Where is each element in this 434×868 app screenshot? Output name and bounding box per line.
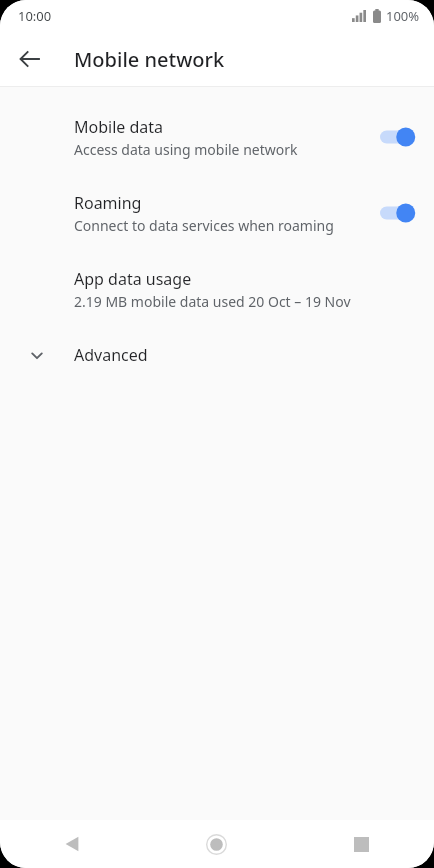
button[interactable]: App data usage bbox=[0, 251, 434, 327]
staticText: Mobile network bbox=[74, 46, 225, 73]
button[interactable]: Toggle setting bbox=[380, 200, 416, 226]
button[interactable]: Roaming bbox=[0, 175, 434, 251]
staticText: 100% bbox=[386, 7, 420, 25]
button[interactable]: Navigate up bbox=[6, 35, 54, 83]
button[interactable]: Mobile data bbox=[0, 99, 434, 175]
button[interactable]: Advanced bbox=[0, 327, 434, 383]
button[interactable]: Back bbox=[0, 820, 144, 868]
button[interactable]: Toggle setting bbox=[380, 124, 416, 150]
staticText: Advanced bbox=[74, 344, 148, 366]
staticText: Access data using mobile network bbox=[74, 140, 298, 159]
button[interactable]: Recent apps bbox=[289, 820, 434, 868]
staticText: 10:00 bbox=[18, 7, 52, 25]
staticText: Connect to data services when roaming bbox=[74, 216, 334, 235]
button[interactable]: Home bbox=[144, 820, 289, 868]
staticText: Mobile data bbox=[74, 116, 164, 138]
staticText: 2.19 MB mobile data used 20 Oct – 19 Nov bbox=[74, 292, 351, 311]
staticText: Roaming bbox=[74, 192, 142, 214]
staticText: App data usage bbox=[74, 268, 192, 290]
